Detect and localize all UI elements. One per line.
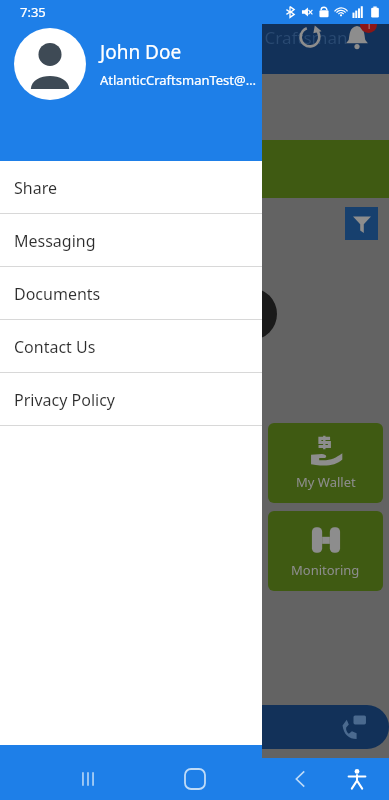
staticText: Contact Us <box>14 336 96 358</box>
staticText: Monitoring <box>291 561 360 579</box>
staticText: Scroll down to Refresh / Up to see more … <box>52 758 210 788</box>
button[interactable]: My Wallet <box>268 423 383 503</box>
staticText: 7:35 <box>20 3 46 21</box>
staticText: Atlantic Craftsman <box>200 26 348 49</box>
staticText: Documents <box>14 283 101 305</box>
button[interactable]: Share <box>0 161 262 214</box>
staticText: John Doe <box>100 39 182 65</box>
staticText: Privacy Policy <box>14 389 115 411</box>
button[interactable]: Recents <box>68 759 108 799</box>
staticText: Share <box>14 177 57 199</box>
staticText: Rewards Paid <box>26 146 115 165</box>
button[interactable]: Contact Us <box>0 320 262 373</box>
staticText: Messaging <box>14 230 96 252</box>
button[interactable]: Home <box>173 758 217 800</box>
button[interactable]: Monitoring <box>268 511 383 591</box>
staticText: AtlanticCraftsmanTest@… <box>100 71 257 89</box>
button[interactable]: Rewards Paid <box>12 140 389 198</box>
staticText: 1 <box>366 18 372 32</box>
button[interactable]: Accessibility <box>339 761 375 797</box>
button[interactable]: Refresh <box>293 20 327 54</box>
button[interactable]: Messaging <box>0 214 262 267</box>
button[interactable]: Documents <box>0 267 262 320</box>
button[interactable]: Filter <box>345 207 378 240</box>
staticText: $0.00 <box>26 167 78 194</box>
button[interactable]: Contact support <box>16 705 389 749</box>
button[interactable]: Notifications <box>339 19 375 55</box>
button[interactable]: Back <box>281 759 321 799</box>
staticText: My Wallet <box>296 473 356 491</box>
button[interactable]: Privacy Policy <box>0 373 262 426</box>
